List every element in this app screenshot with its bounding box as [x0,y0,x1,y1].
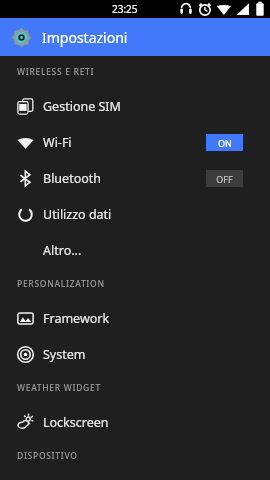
staticText: DISPOSITIVO [17,450,78,462]
button[interactable]: Gestione SIM [0,88,270,124]
staticText: Altro... [43,242,82,259]
staticText: Framework [43,310,110,327]
button[interactable]: Utilizzo dati [0,196,270,232]
staticText: Wi-Fi [43,134,72,151]
button[interactable]: Lockscreen [0,404,270,440]
button[interactable]: Framework [0,300,270,336]
staticText: 23:25 [112,2,138,16]
button[interactable]: System [0,336,270,372]
button[interactable]: OFF [206,170,243,187]
staticText: WIRELESS E RETI [17,66,95,78]
staticText: Gestione SIM [43,98,121,115]
staticText: OFF [216,173,233,185]
staticText: Lockscreen [43,414,109,431]
button[interactable]: Settings [0,18,270,56]
staticText: WEATHER WIDGET [17,382,101,394]
staticText: Impostazioni [42,28,128,47]
button[interactable]: Wi-Fi [0,124,270,160]
staticText: ON [218,137,232,149]
staticText: System [43,346,86,363]
staticText: Bluetooth [43,170,102,187]
other: Settings [11,27,32,48]
button[interactable]: Altro... [0,232,270,268]
staticText: PERSONALIZATION [17,278,105,290]
button[interactable]: Bluetooth [0,160,270,196]
button[interactable]: ON [206,134,243,151]
staticText: Utilizzo dati [43,206,112,223]
